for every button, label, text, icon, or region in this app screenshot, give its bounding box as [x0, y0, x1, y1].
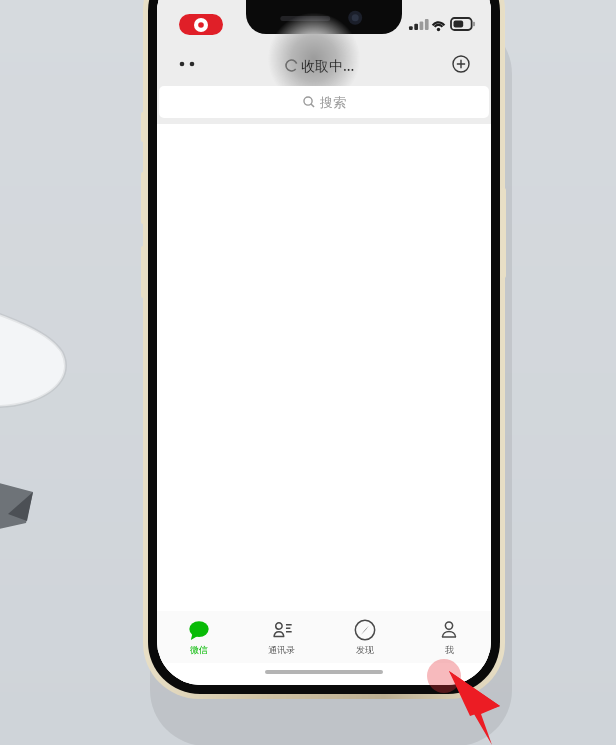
button[interactable]: 通讯录: [240, 611, 323, 663]
button[interactable]: 搜索: [159, 86, 489, 118]
staticText: 收取中...: [301, 56, 355, 75]
staticText: 通讯录: [268, 644, 295, 655]
button[interactable]: 我: [407, 611, 491, 663]
staticText: 微信: [190, 644, 208, 655]
button[interactable]: 发现: [323, 611, 407, 663]
other: Recording: [179, 14, 223, 35]
button[interactable]: 微信: [157, 611, 240, 663]
staticText: 搜索: [320, 94, 346, 110]
staticText: 发现: [356, 644, 374, 655]
staticText: 我: [445, 644, 454, 655]
button[interactable]: Add: [441, 44, 481, 84]
button[interactable]: More: [167, 44, 207, 84]
